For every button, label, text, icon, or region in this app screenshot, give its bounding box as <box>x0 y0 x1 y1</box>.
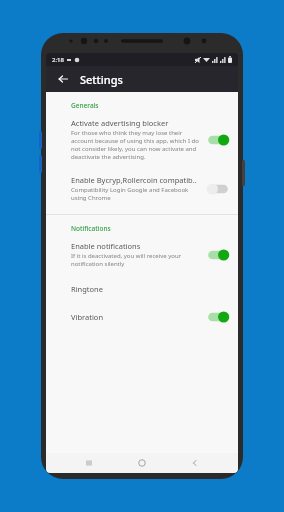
button[interactable]: Back <box>185 453 205 473</box>
staticText: Enable Bycryp,Rollercoin compatib.. <box>71 175 197 185</box>
button[interactable]: Vibration <box>46 306 238 328</box>
staticText: Activate advertising blocker <box>71 118 169 128</box>
button[interactable]: Toggle on <box>206 133 230 147</box>
button[interactable]: Toggle off <box>206 182 230 196</box>
staticText: Vibration <box>71 312 104 322</box>
button[interactable]: Toggle on <box>206 310 230 324</box>
button[interactable]: Enable notifications <box>46 237 238 272</box>
staticText: Generals <box>71 101 99 110</box>
button[interactable]: Back <box>54 70 72 88</box>
staticText: 2:18 <box>52 56 64 64</box>
button[interactable]: Enable Bycryp,Rollercoin compatib.. <box>46 171 238 206</box>
staticText: Compatibility Login Google and Facebook … <box>71 186 200 202</box>
button[interactable]: Toggle on <box>206 248 230 262</box>
staticText: Notifications <box>71 224 111 233</box>
button[interactable]: Activate advertising blocker <box>46 114 238 165</box>
button[interactable]: Home <box>132 453 152 473</box>
button[interactable]: Ringtone <box>46 280 238 298</box>
staticText: For those who think they may lose their … <box>71 129 200 161</box>
staticText: Ringtone <box>71 284 103 294</box>
staticText: Settings <box>80 72 123 87</box>
staticText: Enable notifications <box>71 241 141 251</box>
staticText: If it is deactivated, you will receive y… <box>71 252 200 268</box>
button[interactable]: Recents <box>79 453 99 473</box>
